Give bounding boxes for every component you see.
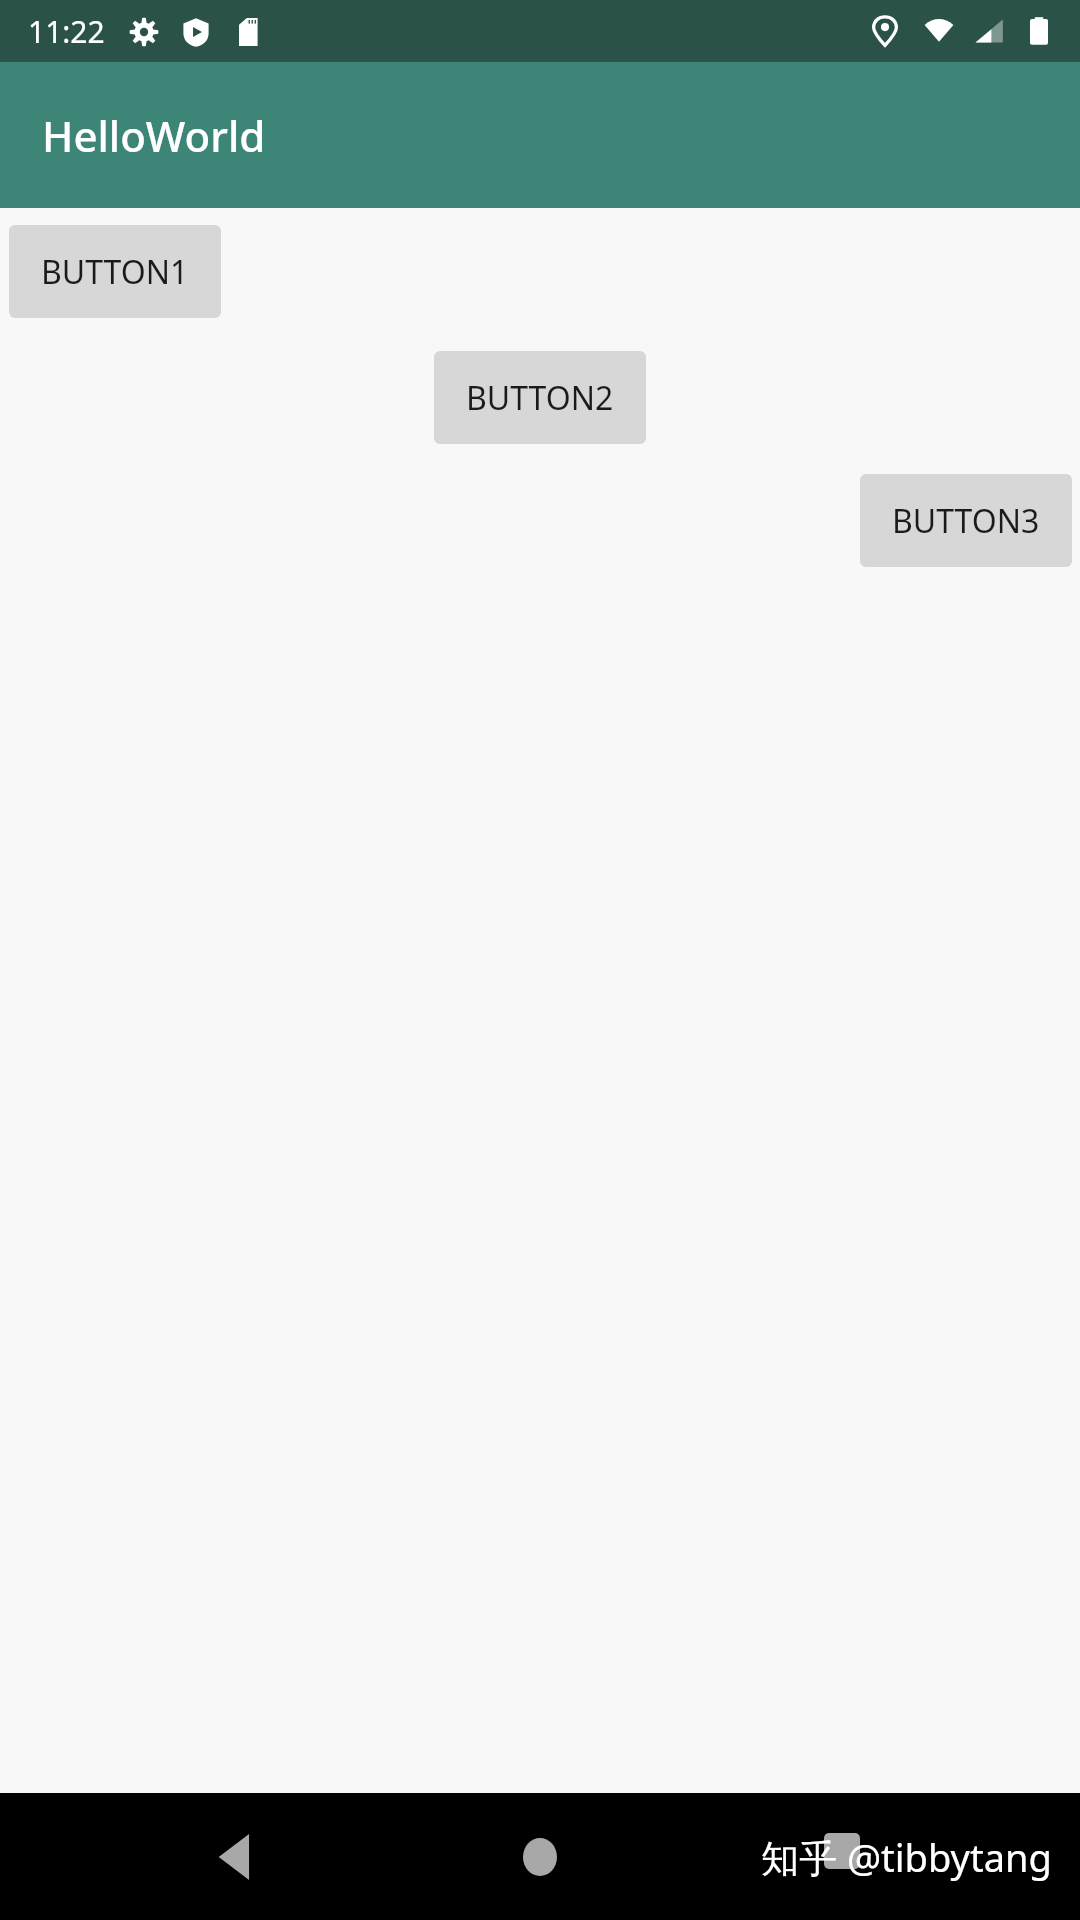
staticText: BUTTON1 (41, 250, 189, 294)
button[interactable]: BUTTON1 (9, 225, 221, 318)
staticText: BUTTON2 (466, 376, 614, 420)
staticText: HelloWorld (42, 107, 266, 164)
staticText: BUTTON3 (892, 499, 1040, 543)
button[interactable]: Back (178, 1797, 298, 1917)
staticText: 知乎 @tibbytang (761, 1831, 1052, 1883)
button[interactable]: Home (480, 1797, 600, 1917)
button[interactable]: BUTTON3 (860, 474, 1072, 567)
staticText: 11:22 (28, 11, 105, 52)
button[interactable]: BUTTON2 (434, 351, 646, 444)
button[interactable]: Recent apps (782, 1797, 902, 1917)
